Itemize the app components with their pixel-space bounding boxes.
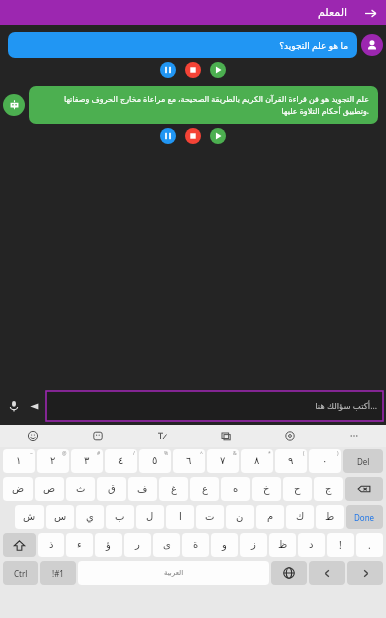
staticText: ( <box>303 450 305 457</box>
button[interactable]: ث <box>66 477 95 501</box>
staticText: ٤ <box>118 455 124 467</box>
button[interactable]: ٢ <box>37 449 69 473</box>
button[interactable]: ب <box>106 505 134 529</box>
staticText: ة <box>193 539 199 551</box>
button[interactable]: و <box>211 533 238 557</box>
button[interactable]: Change language <box>271 561 307 585</box>
button[interactable]: العربية <box>78 561 269 585</box>
button[interactable]: Voice input <box>4 396 24 416</box>
button[interactable]: ن <box>226 505 254 529</box>
button[interactable]: ش <box>15 505 44 529</box>
staticText: ث <box>76 483 86 495</box>
button[interactable]: د <box>298 533 325 557</box>
button[interactable]: . <box>356 533 383 557</box>
button[interactable]: Clipboard <box>194 425 258 447</box>
staticText: ش <box>23 511 36 523</box>
button[interactable]: Play <box>210 128 226 144</box>
button[interactable]: ض <box>3 477 33 501</box>
button[interactable]: Pause <box>160 128 176 144</box>
button[interactable]: ظ <box>269 533 296 557</box>
button[interactable]: ى <box>153 533 180 557</box>
button[interactable]: Ctrl <box>3 561 38 585</box>
button[interactable]: ء <box>66 533 93 557</box>
staticText: م <box>267 511 274 523</box>
button[interactable]: ص <box>35 477 64 501</box>
button[interactable]: Stop <box>185 62 201 78</box>
button[interactable]: Assistant <box>3 94 25 116</box>
button[interactable]: Pause <box>160 62 176 78</box>
button[interactable]: ا <box>166 505 194 529</box>
staticText: غ <box>171 483 177 495</box>
staticText: ط <box>325 511 335 523</box>
staticText: ى <box>163 539 171 551</box>
button[interactable]: ٥ <box>139 449 171 473</box>
button[interactable]: ٦ <box>173 449 205 473</box>
button[interactable]: Handwriting <box>130 425 194 447</box>
button[interactable]: Forward <box>358 1 382 25</box>
button[interactable]: ه <box>221 477 250 501</box>
button[interactable]: Del <box>343 449 383 473</box>
button[interactable]: Settings <box>258 425 322 447</box>
staticText: & <box>233 450 237 457</box>
button[interactable]: ذ <box>38 533 64 557</box>
staticText: ~ <box>30 450 33 457</box>
button[interactable]: !#1 <box>40 561 76 585</box>
button[interactable]: غ <box>159 477 188 501</box>
button[interactable]: More <box>322 425 386 447</box>
button[interactable]: ح <box>283 477 312 501</box>
button[interactable]: ت <box>196 505 224 529</box>
staticText: أكتب سؤالك هنا... <box>52 400 377 412</box>
button[interactable]: علم التجويد هو فن قراءة القرآن الكريم با… <box>29 86 378 124</box>
button[interactable]: Shift <box>3 533 36 557</box>
button[interactable]: ٤ <box>105 449 137 473</box>
staticText: ر <box>135 539 140 551</box>
button[interactable]: Emoji <box>0 425 65 447</box>
button[interactable]: Stop <box>185 128 201 144</box>
button[interactable]: أكتب سؤالك هنا... <box>46 391 383 421</box>
staticText: Ctrl <box>14 568 28 579</box>
button[interactable]: Send <box>24 396 44 416</box>
button[interactable]: Play <box>210 62 226 78</box>
button[interactable]: ٠ <box>309 449 341 473</box>
button[interactable]: ج <box>314 477 343 501</box>
button[interactable]: ٩ <box>275 449 307 473</box>
staticText: ب <box>115 511 125 523</box>
staticText: ل <box>146 511 154 523</box>
staticText: ٢ <box>50 455 56 467</box>
button[interactable]: ١ <box>3 449 35 473</box>
staticText: ٧ <box>220 455 226 467</box>
button[interactable]: Previous <box>309 561 345 585</box>
button[interactable]: ق <box>97 477 126 501</box>
button[interactable]: ٣ <box>71 449 103 473</box>
button[interactable]: خ <box>252 477 281 501</box>
staticText: ! <box>339 538 342 552</box>
button[interactable]: س <box>46 505 74 529</box>
button[interactable]: م <box>256 505 284 529</box>
staticText: و <box>222 539 227 551</box>
button[interactable]: ٧ <box>207 449 239 473</box>
staticText: # <box>97 450 101 457</box>
button[interactable]: Stickers <box>65 425 130 447</box>
staticText: ٠ <box>322 455 328 467</box>
staticText: ج <box>325 483 332 495</box>
button[interactable]: ع <box>190 477 219 501</box>
button[interactable]: ز <box>240 533 267 557</box>
button[interactable]: Profile <box>361 34 383 56</box>
button[interactable]: Done <box>346 505 383 529</box>
button[interactable]: ي <box>76 505 104 529</box>
button[interactable]: Next <box>347 561 383 585</box>
button[interactable]: ؤ <box>95 533 122 557</box>
button[interactable]: Backspace <box>345 477 383 501</box>
button[interactable]: ف <box>128 477 157 501</box>
button[interactable]: ل <box>136 505 164 529</box>
staticText: ز <box>251 539 256 551</box>
button[interactable]: ك <box>286 505 314 529</box>
button[interactable]: ما هو علم التجويد؟ <box>8 32 357 58</box>
button[interactable]: ٨ <box>241 449 273 473</box>
button[interactable]: ر <box>124 533 151 557</box>
staticText: ك <box>296 511 305 523</box>
staticText: * <box>268 450 271 457</box>
button[interactable]: ة <box>182 533 209 557</box>
button[interactable]: ! <box>327 533 354 557</box>
button[interactable]: ط <box>316 505 344 529</box>
